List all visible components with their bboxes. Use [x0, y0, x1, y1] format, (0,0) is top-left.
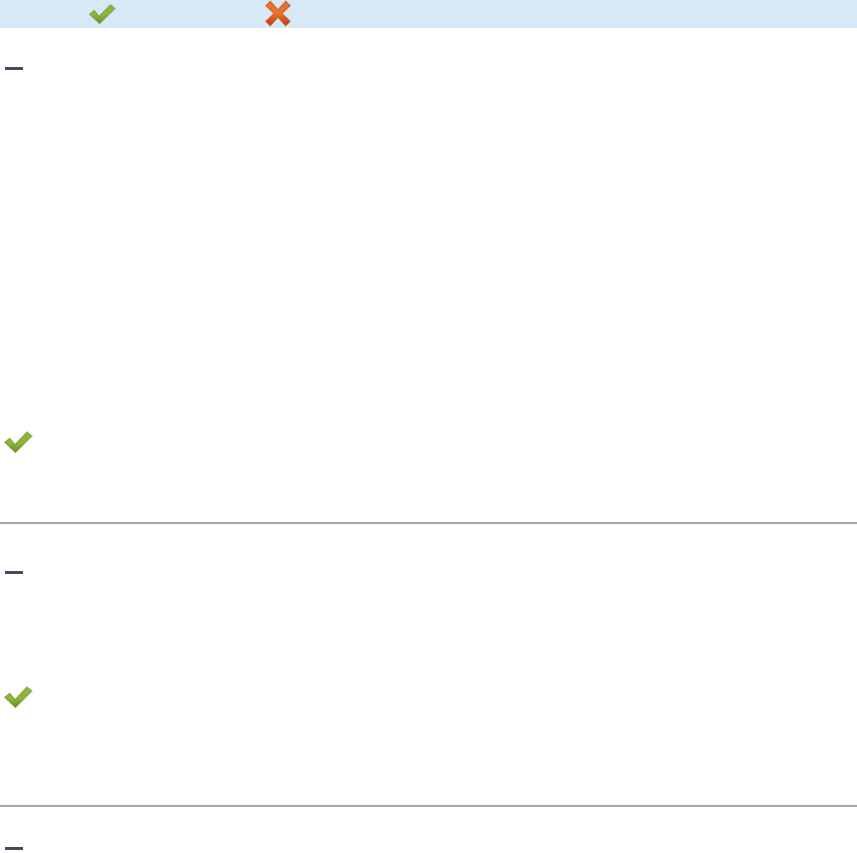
button[interactable]: Completed: [3, 685, 33, 709]
button[interactable]: Accept: [88, 3, 116, 25]
button[interactable]: Completed: [3, 430, 33, 454]
button[interactable]: Reject: [265, 2, 291, 25]
